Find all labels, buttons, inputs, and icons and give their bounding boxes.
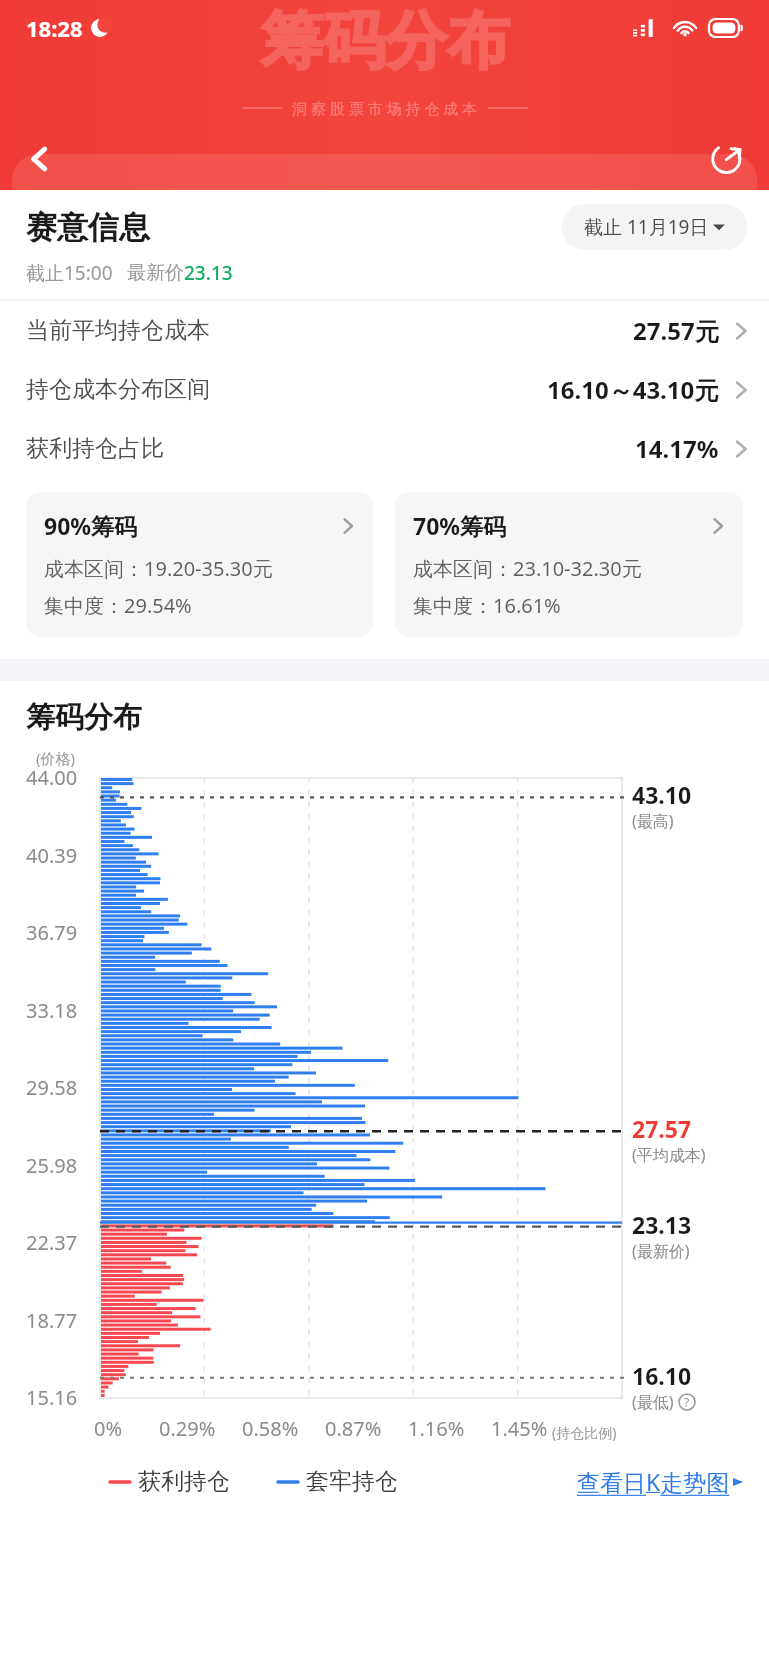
staticText: 40.39 xyxy=(26,842,78,869)
staticText: 筹码分布 xyxy=(26,699,142,736)
staticText: 集中度：29.54% xyxy=(44,592,192,619)
staticText: 0% xyxy=(94,1415,123,1442)
staticText: 获利持仓占比 xyxy=(26,434,164,463)
staticText: 16.10～43.10元 xyxy=(547,373,719,406)
staticText: 14.17% xyxy=(635,432,719,465)
staticText: 16.10 xyxy=(632,1360,692,1391)
button[interactable]: 持仓成本分布区间 xyxy=(0,360,769,419)
button[interactable]: 90%筹码 xyxy=(26,492,373,637)
staticText: 29.58 xyxy=(26,1074,78,1101)
staticText: 36.79 xyxy=(26,919,78,946)
staticText: 当前平均持仓成本 xyxy=(26,316,210,345)
button[interactable]: 截止 11月19日 xyxy=(562,204,747,250)
staticText: (平均成本) xyxy=(632,1144,706,1166)
staticText: 套牢持仓 xyxy=(306,1467,398,1496)
button[interactable]: 查看日K走势图 xyxy=(577,1466,743,1497)
button[interactable]: Help xyxy=(678,1393,696,1411)
button[interactable]: 当前平均持仓成本 xyxy=(0,301,769,360)
staticText: 最新价 xyxy=(127,261,184,285)
staticText: (最低) xyxy=(632,1391,674,1413)
staticText: 1.45% xyxy=(491,1415,548,1442)
staticText: 成本区间：23.10-32.30元 xyxy=(413,555,642,582)
staticText: (最新价) xyxy=(632,1240,690,1262)
staticText: 0.29% xyxy=(159,1415,216,1442)
staticText: 70%筹码 xyxy=(413,510,507,541)
staticText: 截止 11月19日 xyxy=(584,214,709,240)
staticText: 洞 察 股 票 市 场 持 仓 成 本 xyxy=(292,98,478,118)
button[interactable]: 70%筹码 xyxy=(395,492,743,637)
staticText: 23.13 xyxy=(184,260,233,286)
staticText: 18:28 xyxy=(26,13,83,43)
staticText: 0.58% xyxy=(242,1415,299,1442)
button[interactable]: 套牢持仓 xyxy=(278,1467,398,1496)
staticText: 0.87% xyxy=(325,1415,382,1442)
staticText: 1.16% xyxy=(408,1415,465,1442)
button[interactable]: 获利持仓占比 xyxy=(0,419,769,478)
staticText: 43.10 xyxy=(632,779,692,810)
staticText: (最高) xyxy=(632,810,674,832)
button[interactable]: Share xyxy=(701,133,753,185)
staticText: 27.57 xyxy=(632,1113,692,1144)
staticText: 筹码分布 xyxy=(261,2,509,80)
staticText: 90%筹码 xyxy=(44,510,138,541)
staticText: ? xyxy=(684,1394,690,1410)
staticText: 成本区间：19.20-35.30元 xyxy=(44,555,273,582)
staticText: 截止15:00 xyxy=(26,260,113,286)
staticText: (价格) xyxy=(36,748,76,768)
button[interactable]: 获利持仓 xyxy=(110,1467,230,1496)
staticText: 22.37 xyxy=(26,1229,78,1256)
staticText: 25.98 xyxy=(26,1152,78,1179)
staticText: 23.13 xyxy=(632,1209,692,1240)
staticText: 27.57元 xyxy=(633,314,719,347)
staticText: 33.18 xyxy=(26,997,78,1024)
staticText: 44.00 xyxy=(26,764,78,791)
staticText: 查看日K走势图 xyxy=(577,1466,730,1497)
staticText: 15.16 xyxy=(26,1384,78,1411)
staticText: 获利持仓 xyxy=(138,1467,230,1496)
staticText: 18.77 xyxy=(26,1307,78,1334)
staticText: (持仓比例) xyxy=(552,1423,617,1442)
staticText: 集中度：16.61% xyxy=(413,592,561,619)
button[interactable]: Back xyxy=(16,135,64,183)
staticText: 赛意信息 xyxy=(26,208,150,247)
staticText: 持仓成本分布区间 xyxy=(26,375,210,404)
